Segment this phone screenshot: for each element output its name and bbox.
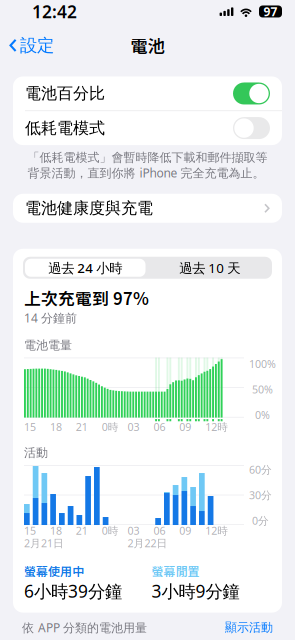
staticText: 0時	[102, 523, 119, 538]
staticText: 0分	[252, 513, 269, 528]
staticText: 60分	[249, 462, 272, 477]
staticText: 顯示活動	[225, 620, 273, 635]
staticText: 21	[76, 523, 88, 538]
staticText: 06	[153, 523, 165, 538]
button[interactable]: 顯示活動	[225, 620, 273, 635]
staticText: 97	[263, 3, 277, 19]
staticText: 12時	[205, 523, 228, 538]
staticText: 18	[50, 523, 62, 538]
button[interactable]: 過去 24 小時	[23, 257, 147, 279]
staticText: 06	[153, 420, 165, 434]
staticText: 依 APP 分類的電池用量	[22, 620, 147, 635]
staticText: 30分	[249, 488, 272, 502]
staticText: 6小時39分鐘	[24, 580, 122, 603]
staticText: 12時	[205, 420, 228, 434]
staticText: 電池	[130, 33, 164, 58]
staticText: 2月21日	[24, 536, 64, 550]
staticText: 2月22日	[127, 536, 167, 550]
staticText: 設定	[20, 35, 54, 56]
staticText: 100%	[249, 357, 276, 371]
staticText: 過去 10 天	[179, 259, 240, 277]
button[interactable]: 電池百分比	[13, 76, 282, 110]
staticText: 18	[50, 420, 62, 434]
button[interactable]: 過去 10 天	[147, 257, 272, 279]
staticText: 電池電量	[24, 338, 72, 352]
button[interactable]: 電池健康度與充電	[13, 194, 282, 223]
staticText: 上次充電到 97%	[24, 286, 149, 310]
staticText: 14 分鐘前	[24, 310, 77, 326]
staticText: 03	[127, 420, 139, 434]
button[interactable]: 設定	[3, 31, 60, 59]
staticText: 3小時9分鐘	[151, 580, 239, 603]
staticText: 15	[24, 420, 36, 434]
staticText: 12:42	[32, 0, 77, 23]
staticText: 過去 24 小時	[48, 259, 122, 277]
staticText: 09	[179, 420, 191, 434]
staticText: 螢幕閒置	[151, 562, 199, 580]
staticText: 電池健康度與充電	[25, 198, 153, 218]
staticText: 活動	[24, 445, 48, 460]
staticText: 0時	[102, 420, 119, 434]
staticText: 03	[127, 523, 139, 538]
staticText: 0%	[255, 408, 270, 422]
staticText: 50%	[252, 382, 273, 396]
staticText: 電池百分比	[25, 84, 105, 103]
staticText: 螢幕使用中	[24, 562, 84, 580]
staticText: 21	[76, 420, 88, 434]
staticText: 09	[179, 523, 191, 538]
staticText: 15	[24, 523, 36, 538]
staticText: 低耗電模式	[25, 118, 105, 138]
staticText: 「低耗電模式」會暫時降低下載和郵件擷取等背景活動，直到你將 iPhone 完全充…	[27, 150, 267, 181]
button[interactable]: 低耗電模式	[13, 111, 282, 145]
